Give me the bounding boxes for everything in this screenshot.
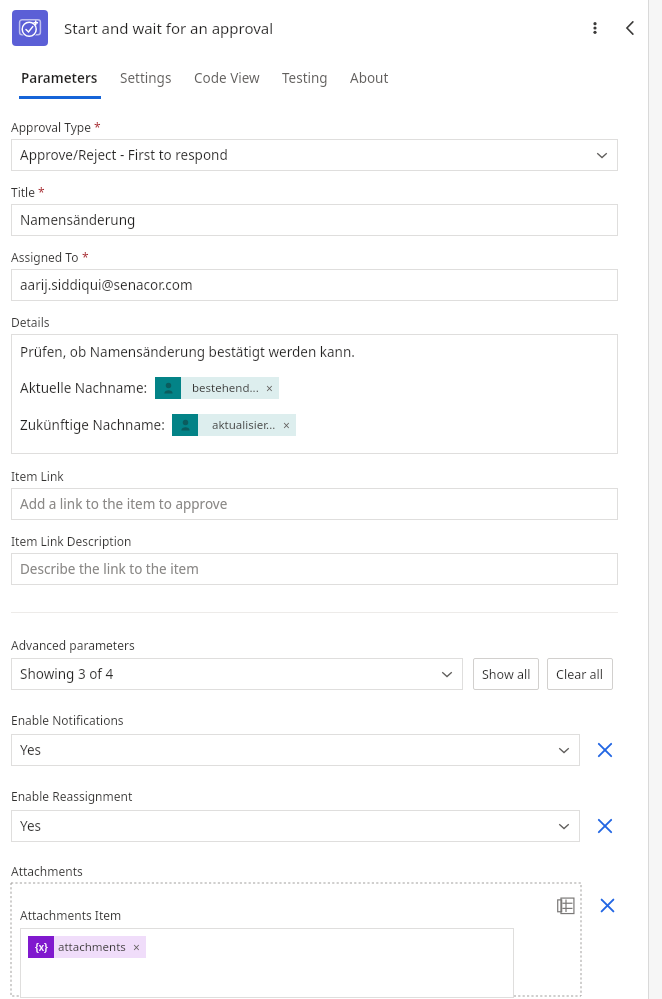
staticText: Title	[11, 184, 35, 200]
staticText: Zukünftige Nachname:	[20, 416, 165, 434]
staticText: Start and wait for an approval	[64, 18, 274, 38]
staticText: Namensänderung	[20, 211, 618, 229]
button[interactable]: {x}	[28, 936, 146, 958]
staticText: bestehend...	[192, 380, 259, 396]
button[interactable]: Add a link to the item to approve	[11, 488, 618, 520]
staticText: Aktuelle Nachname:	[20, 379, 148, 397]
staticText: Approval Type	[11, 119, 91, 135]
staticText: *	[38, 184, 45, 200]
button[interactable]: Yes	[11, 734, 580, 766]
staticText: Item Link Description	[11, 533, 132, 549]
button[interactable]: About	[339, 56, 400, 100]
staticText: Prüfen, ob Namensänderung bestätigt werd…	[20, 343, 355, 361]
staticText: Approve/Reject - First to respond	[20, 146, 595, 164]
button[interactable]: Code View	[183, 56, 271, 100]
staticText: aktualisier...	[212, 417, 276, 433]
staticText: About	[350, 69, 389, 87]
staticText: Attachments	[11, 863, 83, 879]
button[interactable]: aarij.siddiqui@senacor.com	[11, 269, 618, 301]
button[interactable]: Yes	[11, 810, 580, 842]
staticText: Code View	[194, 69, 260, 87]
staticText: Details	[11, 314, 50, 330]
button[interactable]: aktualisier...	[172, 414, 296, 436]
staticText: ×	[133, 939, 140, 955]
staticText: Yes	[20, 817, 557, 835]
button[interactable]: Parameters	[10, 56, 109, 100]
button[interactable]: Settings	[109, 56, 183, 100]
staticText: Showing 3 of 4	[20, 665, 440, 683]
staticText: Assigned To	[11, 249, 79, 265]
staticText: Describe the link to the item	[20, 560, 618, 578]
staticText: Advanced parameters	[11, 637, 135, 653]
button[interactable]: Remove parameter	[588, 809, 622, 843]
button[interactable]: Remove parameter	[588, 733, 622, 767]
button[interactable]: bestehend...	[155, 377, 279, 399]
staticText: *	[94, 119, 101, 135]
staticText: Parameters	[21, 69, 98, 87]
button[interactable]: Namensänderung	[11, 204, 618, 236]
staticText: Item Link	[11, 468, 64, 484]
button[interactable]: Clear all	[547, 658, 613, 690]
staticText: *	[82, 249, 89, 265]
staticText: ×	[266, 380, 273, 396]
staticText: Testing	[282, 69, 328, 87]
button[interactable]: Approve/Reject - First to respond	[11, 139, 618, 171]
button[interactable]: Show all	[473, 658, 539, 690]
button[interactable]: Collapse	[612, 10, 648, 46]
staticText: aarij.siddiqui@senacor.com	[20, 276, 618, 294]
staticText: attachments	[58, 939, 126, 955]
staticText: ×	[283, 417, 290, 433]
button[interactable]: Approvals connector	[12, 10, 48, 46]
staticText: {x}	[35, 940, 48, 954]
button[interactable]: {x}	[20, 928, 514, 998]
button[interactable]: Prüfen, ob Namensänderung bestätigt werd…	[11, 334, 618, 454]
button[interactable]: Testing	[271, 56, 339, 100]
button[interactable]: Showing 3 of 4	[11, 658, 463, 690]
button[interactable]: More options	[578, 11, 612, 45]
staticText: Clear all	[556, 666, 604, 683]
staticText: Attachments Item	[20, 907, 122, 923]
button[interactable]: Describe the link to the item	[11, 553, 618, 585]
button[interactable]: Switch to input array	[551, 891, 581, 921]
staticText: Settings	[120, 69, 172, 87]
staticText: Yes	[20, 741, 557, 759]
staticText: Show all	[482, 666, 531, 683]
staticText: Add a link to the item to approve	[20, 495, 618, 513]
staticText: Enable Notifications	[11, 712, 124, 728]
staticText: Enable Reassignment	[11, 788, 133, 804]
button[interactable]: Remove parameter	[591, 889, 624, 922]
